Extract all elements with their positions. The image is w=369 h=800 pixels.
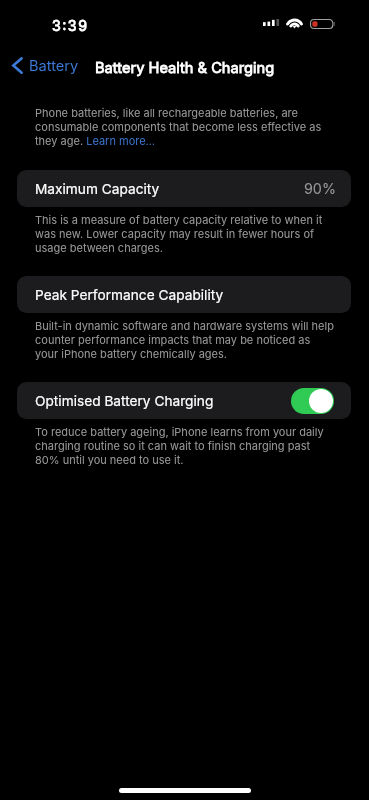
other: Back bbox=[12, 57, 23, 74]
staticText: Battery Health & Charging bbox=[95, 59, 275, 77]
button[interactable]: Optimised Battery Charging, on bbox=[291, 388, 334, 414]
button[interactable]: Peak Performance Capability bbox=[17, 276, 351, 313]
staticText: This is a measure of battery capacity re… bbox=[35, 213, 323, 255]
staticText: To reduce battery ageing, iPhone learns … bbox=[35, 425, 324, 467]
staticText: 90% bbox=[304, 181, 336, 197]
staticText: 3:39 bbox=[52, 17, 89, 34]
staticText: Peak Performance Capability bbox=[35, 287, 224, 303]
staticText: Built-in dynamic software and hardware s… bbox=[35, 319, 334, 361]
staticText: Phone batteries, like all rechargeable b… bbox=[35, 106, 322, 148]
staticText: Optimised Battery Charging bbox=[35, 393, 214, 409]
button[interactable]: Maximum Capacity bbox=[17, 170, 351, 207]
button[interactable]: Back bbox=[6, 52, 87, 79]
staticText: Maximum Capacity bbox=[35, 181, 160, 197]
staticText: Battery bbox=[29, 58, 79, 74]
button[interactable]: Optimised Battery Charging bbox=[17, 382, 351, 419]
